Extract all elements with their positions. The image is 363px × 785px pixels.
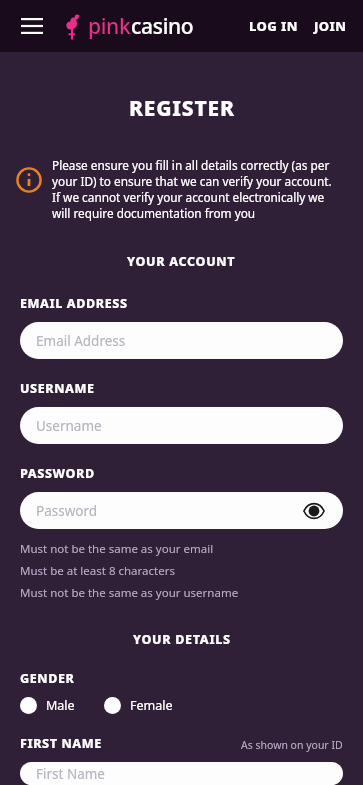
staticText: casino (131, 12, 194, 41)
button[interactable]: Email Address (20, 322, 343, 359)
button[interactable]: Female (104, 697, 173, 714)
staticText: Username (36, 417, 102, 435)
staticText: Must not be the same as your username (20, 585, 239, 601)
staticText: YOUR DETAILS (133, 631, 231, 648)
staticText: As shown on your ID (241, 738, 343, 752)
staticText: REGISTER (129, 94, 235, 123)
staticText: LOG IN (249, 17, 298, 35)
button[interactable]: Pink Casino home (64, 12, 194, 41)
staticText: YOUR ACCOUNT (127, 253, 236, 270)
staticText: pink (88, 12, 131, 41)
staticText: Password (36, 502, 98, 520)
button[interactable]: JOIN (310, 9, 351, 43)
staticText: Must be at least 8 characters (20, 563, 175, 579)
staticText: First Name (36, 765, 105, 783)
button[interactable]: LOG IN (243, 9, 304, 43)
button[interactable]: Password (20, 492, 343, 529)
staticText: GENDER (20, 670, 75, 687)
staticText: FIRST NAME (20, 735, 102, 752)
staticText: Email Address (36, 332, 126, 350)
staticText: EMAIL ADDRESS (20, 295, 128, 312)
button[interactable]: First Name (20, 762, 343, 785)
button[interactable]: Username (20, 407, 343, 444)
button[interactable]: Male (20, 697, 75, 714)
staticText: Must not be the same as your email (20, 541, 214, 557)
button[interactable]: Show password (301, 498, 327, 524)
staticText: Female (130, 697, 173, 714)
staticText: PASSWORD (20, 465, 95, 482)
staticText: Male (46, 697, 75, 714)
button[interactable]: Menu (14, 8, 50, 44)
staticText: JOIN (314, 17, 347, 35)
staticText: USERNAME (20, 380, 95, 397)
staticText: Please ensure you fill in all details co… (52, 157, 341, 221)
